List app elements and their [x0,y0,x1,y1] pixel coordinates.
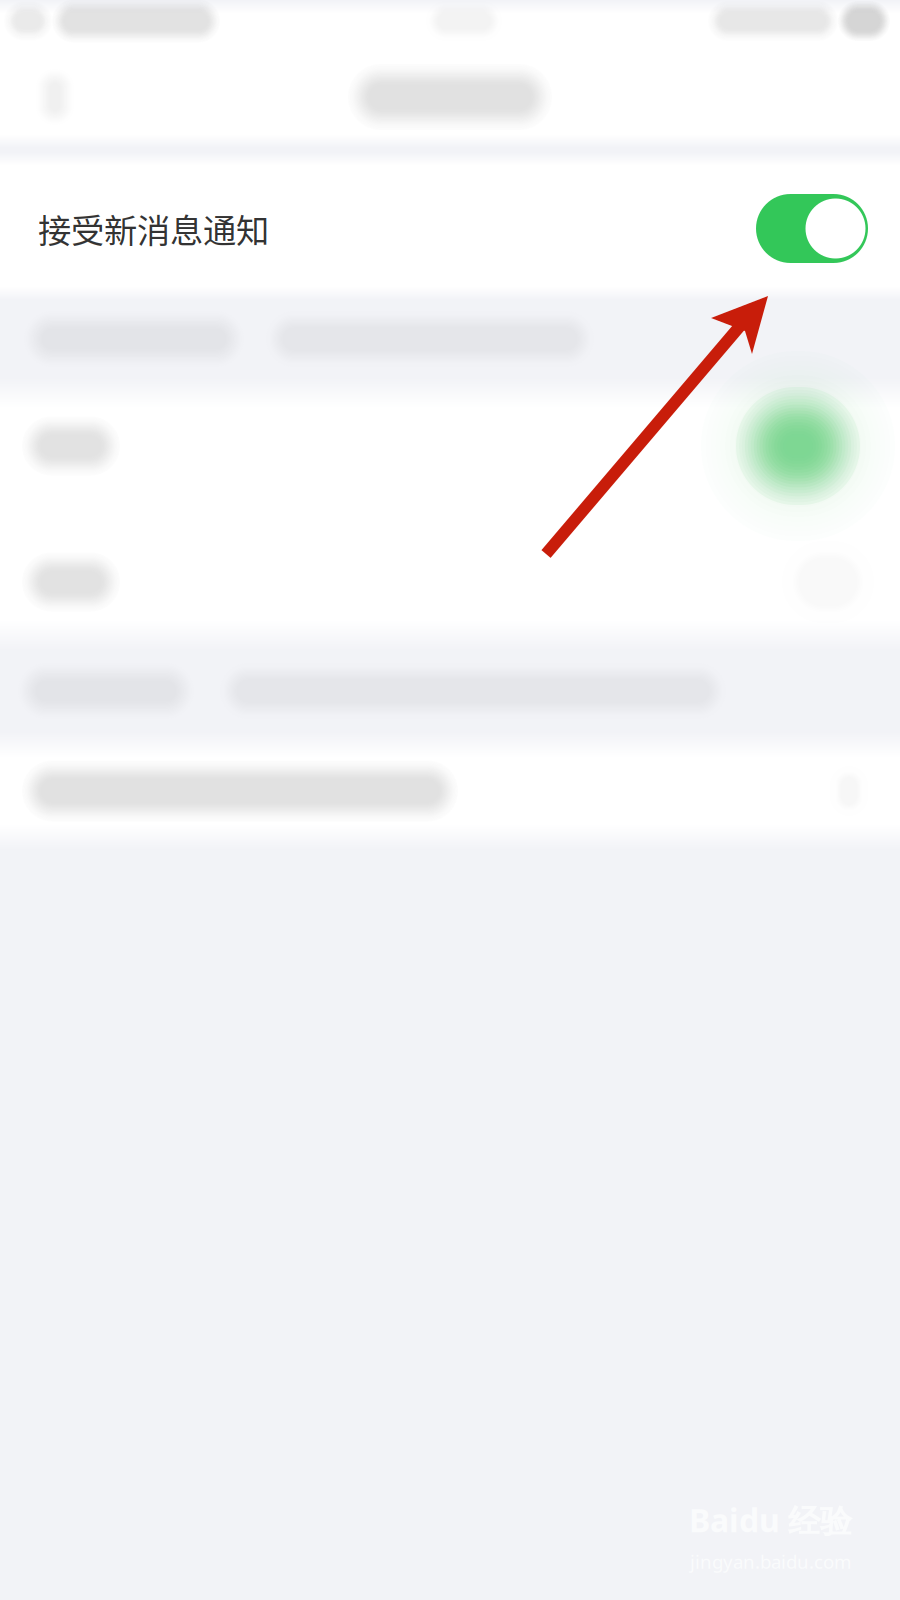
staticText: 接受新消息通知 [38,204,269,253]
button[interactable]: 接受新消息通知 [0,152,900,300]
staticText: Baidu 经验 [689,1498,852,1541]
